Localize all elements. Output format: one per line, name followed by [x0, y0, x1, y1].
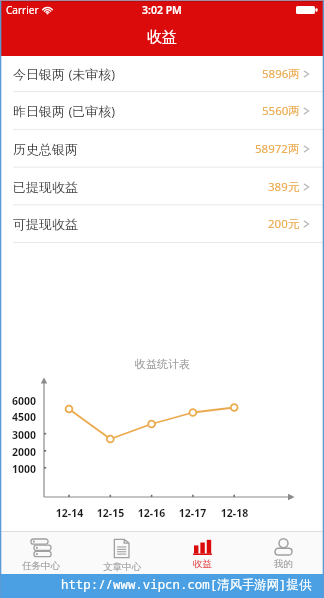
staticText: 收益统计表 [135, 357, 190, 371]
staticText: 今日银两 (未审核) [13, 65, 116, 83]
staticText: 3000 [4, 428, 36, 442]
staticText: 200元 [268, 216, 300, 232]
staticText: 389元 [268, 179, 300, 195]
staticText: 5560两 [262, 103, 300, 119]
staticText: Carrier [6, 3, 39, 17]
staticText: 已提现收益 [13, 179, 78, 195]
button[interactable]: 任务中心 [0, 531, 81, 574]
button[interactable]: 文章中心 [81, 531, 162, 574]
staticText: http://www.vipcn.com[清风手游网]提供 [61, 576, 312, 593]
staticText: 12-15 [91, 506, 130, 520]
staticText: 历史总银两 [13, 141, 78, 157]
staticText: 昨日银两 (已审核) [13, 102, 116, 120]
button[interactable]: 收益 [162, 531, 243, 574]
staticText: 12-18 [215, 506, 254, 520]
staticText: 12-14 [50, 506, 89, 520]
staticText: 文章中心 [103, 561, 141, 573]
button[interactable]: 今日银两 (未审核) [0, 55, 324, 93]
staticText: 6000 [4, 394, 36, 408]
staticText: 4500 [4, 410, 36, 424]
staticText: 2000 [4, 445, 36, 459]
button[interactable]: 我的 [243, 531, 324, 574]
staticText: 我的 [274, 558, 293, 570]
staticText: 3:02 PM [142, 3, 182, 17]
button[interactable]: 已提现收益 [0, 168, 324, 206]
staticText: 任务中心 [22, 560, 60, 572]
staticText: 5896两 [262, 66, 300, 82]
staticText: 收益 [193, 558, 212, 570]
staticText: 58972两 [255, 141, 300, 157]
button[interactable]: 历史总银两 [0, 130, 324, 168]
staticText: 12-16 [132, 506, 171, 520]
staticText: 可提现收益 [13, 216, 78, 232]
staticText: 收益 [147, 28, 177, 47]
button[interactable]: 可提现收益 [0, 205, 324, 243]
staticText: 12-17 [173, 506, 212, 520]
button[interactable]: 昨日银两 (已审核) [0, 92, 324, 130]
staticText: 1000 [4, 462, 36, 476]
